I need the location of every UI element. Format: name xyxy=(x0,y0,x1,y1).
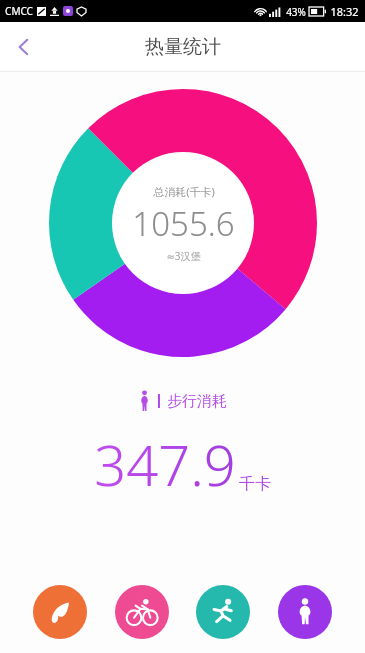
staticText: 千卡 xyxy=(239,474,271,494)
staticText: 43% xyxy=(286,5,306,19)
button[interactable]: Running xyxy=(196,585,250,639)
button[interactable]: Cycling xyxy=(115,585,169,639)
staticText: 热量统计 xyxy=(145,35,221,59)
button[interactable]: Back xyxy=(0,23,48,71)
staticText: 1055.6 xyxy=(132,201,235,246)
staticText: 347.9 xyxy=(94,426,236,502)
staticText: CMCC xyxy=(5,4,33,18)
staticText: 总消耗(千卡) xyxy=(153,184,215,199)
button[interactable]: Calories xyxy=(33,585,87,639)
staticText: 步行消耗 xyxy=(167,392,227,411)
staticText: ≈3汉堡 xyxy=(166,249,201,263)
button[interactable]: Walking xyxy=(278,585,332,639)
staticText: 18:32 xyxy=(330,4,359,19)
